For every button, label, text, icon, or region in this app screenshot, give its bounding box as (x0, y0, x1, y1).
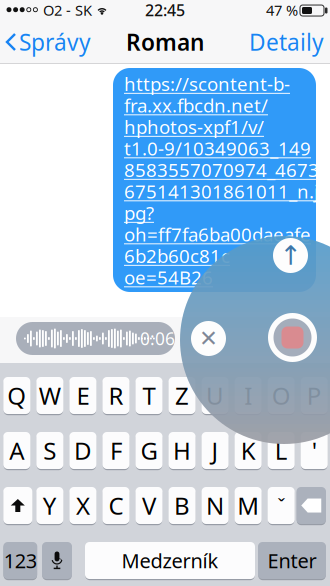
button[interactable]: J (202, 431, 229, 469)
staticText: J (212, 435, 219, 466)
button[interactable]: S (36, 431, 63, 469)
button[interactable]: H (169, 431, 196, 469)
staticText: 22:45 (145, 0, 185, 21)
staticText: ↑ (279, 240, 301, 271)
staticText: C (108, 490, 123, 521)
staticText: B (174, 490, 190, 521)
button[interactable]: B (169, 486, 196, 524)
button[interactable]: E (69, 376, 96, 414)
staticText: N (206, 490, 224, 521)
staticText: S (43, 435, 56, 466)
staticText: Medzerník (121, 547, 218, 574)
staticText: F (110, 435, 122, 466)
button[interactable]: M (235, 486, 262, 524)
staticText: oe=54B26 (124, 265, 213, 290)
staticText: P (307, 380, 322, 411)
button[interactable]: W (36, 376, 63, 414)
staticText: Detaily (249, 27, 324, 57)
staticText: O (272, 380, 291, 411)
staticText: X (76, 490, 90, 521)
button[interactable]: I (235, 376, 262, 414)
staticText: pg? (124, 200, 154, 225)
button[interactable] (42, 541, 72, 579)
button[interactable]: G (135, 431, 162, 469)
staticText: ' (312, 435, 317, 466)
staticText: fra.xx.fbcdn.net/ (124, 93, 268, 118)
button[interactable]: P (301, 376, 328, 414)
button[interactable]: N (202, 486, 229, 524)
button[interactable]: Stop recording (268, 313, 317, 362)
button[interactable]: C (102, 486, 129, 524)
button[interactable]: O (268, 376, 295, 414)
staticText: ✕ (199, 326, 218, 351)
button[interactable]: K (235, 431, 262, 469)
staticText: D (74, 435, 92, 466)
staticText: U (206, 380, 224, 411)
button[interactable]: Y (36, 486, 63, 524)
button[interactable]: Z (169, 376, 196, 414)
button[interactable]: A (3, 431, 30, 469)
button[interactable]: Enter (258, 541, 326, 579)
button[interactable] (3, 486, 32, 524)
staticText: Správy (19, 27, 91, 57)
button[interactable]: Cancel (191, 321, 226, 356)
button[interactable]: D (69, 431, 96, 469)
button[interactable]: Detaily (240, 30, 324, 54)
staticText: hphotos-xpf1/v/ (124, 114, 264, 139)
staticText: 675141301861011_n.j (124, 179, 319, 204)
staticText: 6b2b60c81c (124, 243, 230, 268)
staticText: Roman (126, 27, 204, 57)
staticText: 47 % (266, 0, 298, 20)
button[interactable]: Q (3, 376, 30, 414)
button[interactable]: Send (273, 238, 308, 273)
button[interactable]: X (69, 486, 96, 524)
staticText: E (76, 380, 89, 411)
staticText: T (142, 380, 155, 411)
staticText: Y (43, 490, 57, 521)
staticText: K (241, 435, 256, 466)
staticText: ˇ (277, 492, 285, 519)
staticText: Q (7, 380, 26, 411)
staticText: Enter (267, 547, 316, 574)
button[interactable]: T (135, 376, 162, 414)
staticText: M (237, 490, 259, 521)
button[interactable]: ' (301, 431, 328, 469)
staticText: W (39, 380, 61, 411)
button[interactable]: 123 (3, 541, 37, 579)
staticText: O2 - SK (43, 0, 92, 20)
button[interactable] (296, 486, 326, 524)
button[interactable]: Medzerník (85, 541, 255, 579)
staticText: 123 (4, 547, 37, 574)
button[interactable]: Správy (6, 28, 106, 56)
button[interactable]: F (102, 431, 129, 469)
staticText: G (140, 435, 157, 466)
staticText: A (9, 435, 24, 466)
staticText: 0:06 (140, 327, 175, 350)
staticText: H (173, 435, 191, 466)
staticText: L (275, 435, 288, 466)
staticText: R (108, 380, 123, 411)
button[interactable]: V (135, 486, 162, 524)
button[interactable]: R (102, 376, 129, 414)
button[interactable]: L (268, 431, 295, 469)
staticText: V (142, 490, 156, 521)
staticText: I (244, 380, 252, 411)
button[interactable]: ˇ (268, 486, 295, 524)
staticText: https://scontent-b- (124, 71, 290, 96)
staticText: Z (175, 380, 189, 411)
staticText: 8583557070974_4673 (124, 157, 319, 182)
staticText: t1.0-9/10349063_149 (124, 136, 311, 161)
staticText: oh=ff7fa6ba00daeafe (124, 222, 311, 247)
button[interactable]: U (202, 376, 229, 414)
